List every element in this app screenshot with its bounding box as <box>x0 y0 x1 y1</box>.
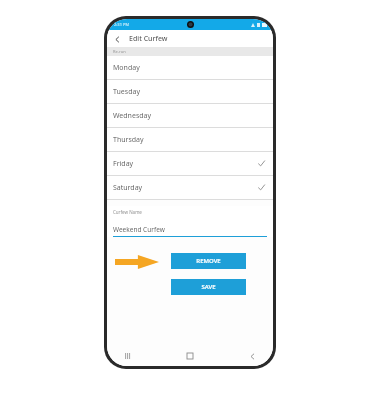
button[interactable]: SAVE <box>171 279 246 295</box>
staticText: Thursday <box>113 135 144 145</box>
staticText: 2:31 PM <box>114 22 130 27</box>
button[interactable]: Back <box>245 349 259 363</box>
staticText: Wednesday <box>113 111 152 121</box>
button[interactable]: Back <box>111 33 123 45</box>
button[interactable]: Wednesday <box>107 104 273 127</box>
staticText: Friday <box>113 159 134 169</box>
staticText: Curfew Name <box>113 209 142 215</box>
staticText: Tuesday <box>113 87 140 97</box>
button[interactable]: Saturday <box>107 176 273 199</box>
staticText: SAVE <box>201 283 216 291</box>
staticText: Saturday <box>113 183 143 193</box>
button[interactable]: REMOVE <box>171 253 246 269</box>
staticText: Weekend Curfew <box>113 225 165 234</box>
staticText: REMOVE <box>196 257 221 265</box>
button[interactable]: Friday <box>107 152 273 175</box>
button[interactable]: Home <box>183 349 197 363</box>
button[interactable]: Weekend Curfew <box>113 225 267 237</box>
staticText: Monday <box>113 63 140 73</box>
button[interactable]: Thursday <box>107 128 273 151</box>
staticText: Edit Curfew <box>129 34 168 44</box>
button[interactable]: Recents <box>121 349 135 363</box>
staticText: Re-run <box>113 49 126 54</box>
button[interactable]: Monday <box>107 56 273 79</box>
button[interactable]: Tuesday <box>107 80 273 103</box>
